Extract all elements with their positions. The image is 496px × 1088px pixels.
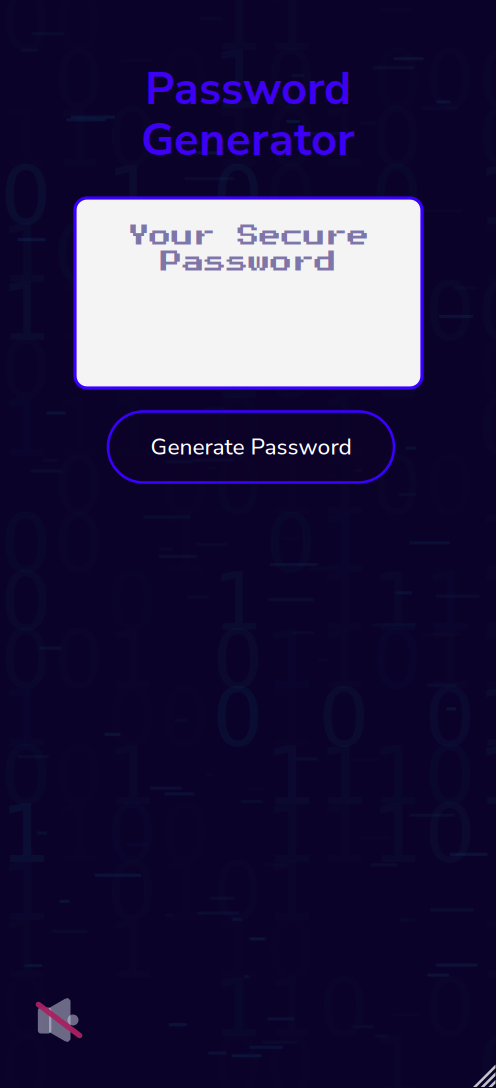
staticText: 1 [212, 555, 263, 648]
staticText: 0 [0, 149, 51, 242]
button[interactable]: Unmute sound [37, 998, 81, 1046]
staticText: 1 [424, 1077, 475, 1088]
staticText: 0 [424, 787, 475, 880]
staticText: 0 [371, 207, 422, 300]
staticText: 0 [159, 33, 210, 126]
staticText: 1 [212, 207, 263, 300]
staticText: 0 [212, 613, 263, 706]
staticText: 1 [0, 787, 51, 880]
staticText: 1 [212, 265, 263, 358]
staticText: 1 [318, 91, 369, 184]
staticText: 1 [318, 381, 369, 474]
staticText: 0 [477, 1019, 496, 1088]
staticText: 0 [53, 207, 104, 300]
staticText: 1 [53, 91, 104, 184]
staticText: 0 [159, 439, 210, 532]
staticText: 1 [265, 439, 316, 532]
staticText: 1 [318, 265, 369, 358]
staticText: 0 [318, 671, 369, 764]
staticText: 0 [212, 1019, 263, 1088]
staticText: 0 [265, 91, 316, 184]
staticText: 0 [53, 33, 104, 126]
staticText: 1 [318, 207, 369, 300]
staticText: 0 [212, 381, 263, 474]
staticText: 1 [477, 1077, 496, 1088]
staticText: 1 [53, 265, 104, 358]
staticText: 0 [265, 265, 316, 358]
staticText: 0 [265, 149, 316, 242]
button[interactable]: Generate Password [108, 411, 394, 482]
staticText: 0 [371, 265, 422, 358]
staticText: 0 [424, 671, 475, 764]
staticText: 0 [265, 207, 316, 300]
staticText: 1 [106, 381, 157, 474]
staticText: 0 [424, 729, 475, 822]
staticText: 0 [318, 323, 369, 416]
staticText: 1 [212, 33, 263, 126]
staticText: Generator [141, 109, 355, 171]
staticText: 0 [265, 33, 316, 126]
staticText: 1 [106, 149, 157, 242]
staticText: 0 [212, 671, 263, 764]
staticText: 0 [265, 323, 316, 416]
staticText: 1 [212, 323, 263, 416]
